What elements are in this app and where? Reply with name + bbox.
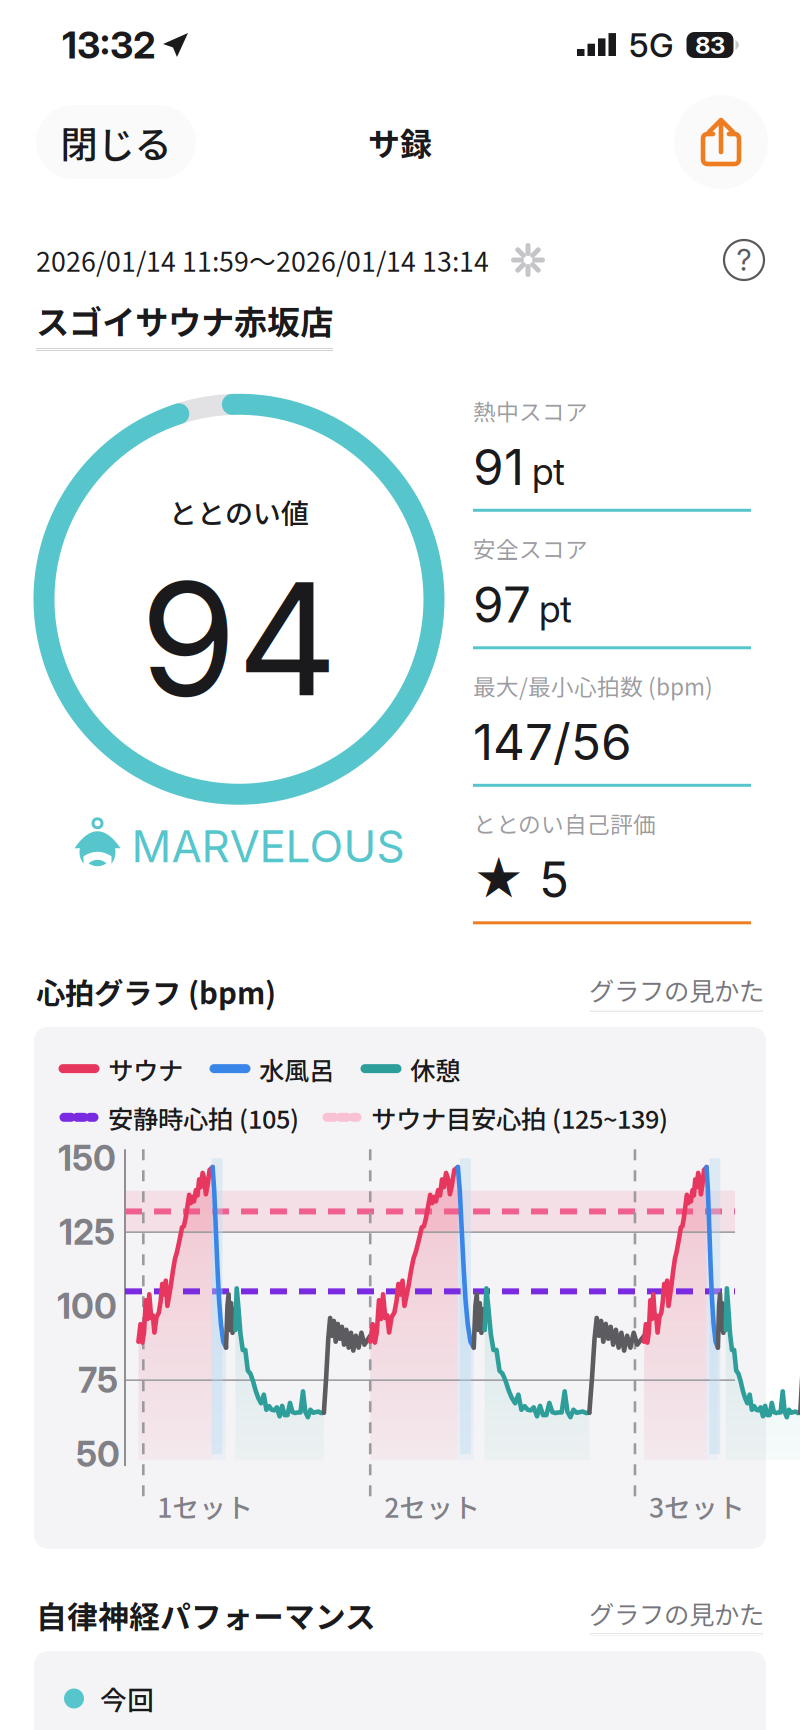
- staticText: ととのい自己評価: [473, 807, 656, 840]
- staticText: 94: [140, 544, 338, 733]
- staticText: 147/56: [473, 712, 632, 772]
- staticText: 心拍グラフ (bpm): [36, 970, 276, 1013]
- staticText: グラフの見かた: [589, 971, 764, 1008]
- staticText: 3セット: [649, 1487, 745, 1525]
- staticText: 91: [473, 437, 524, 497]
- staticText: pt: [539, 586, 572, 631]
- staticText: 2026/01/14 11:59〜2026/01/14 13:14: [36, 241, 489, 279]
- staticText: 安静時心拍 (105): [108, 1099, 299, 1136]
- staticText: 休憩: [410, 1051, 460, 1087]
- staticText: ?: [736, 242, 751, 278]
- button[interactable]: Help: [724, 240, 764, 280]
- staticText: サ録: [368, 119, 432, 165]
- staticText: 5G: [629, 25, 674, 65]
- staticText: 自律神経パフォーマンス: [36, 1593, 376, 1637]
- staticText: 83: [695, 30, 725, 59]
- button[interactable]: 閉じる: [36, 105, 196, 179]
- staticText: ★ 5: [473, 850, 569, 909]
- staticText: 50: [76, 1433, 120, 1475]
- staticText: グラフの見かた: [589, 1595, 764, 1632]
- staticText: 熱中スコア: [473, 394, 588, 427]
- button[interactable]: グラフの見かた: [589, 1595, 764, 1635]
- staticText: 97: [473, 575, 531, 634]
- staticText: 1セット: [157, 1487, 253, 1525]
- staticText: 2セット: [384, 1487, 480, 1525]
- staticText: 今回: [100, 1679, 154, 1718]
- staticText: 125: [59, 1211, 115, 1253]
- staticText: ととのい値: [169, 492, 309, 532]
- staticText: MARVELOUS: [131, 820, 404, 873]
- staticText: 13:32: [62, 22, 156, 68]
- button[interactable]: グラフの見かた: [589, 971, 764, 1012]
- button[interactable]: Share: [674, 95, 768, 189]
- staticText: 閉じる: [60, 115, 171, 169]
- staticText: 最大/最小心拍数 (bpm): [473, 669, 713, 702]
- staticText: サウナ目安心拍 (125~139): [371, 1099, 668, 1136]
- staticText: pt: [532, 449, 565, 494]
- staticText: スゴイサウナ赤坂店: [36, 296, 333, 344]
- staticText: 100: [57, 1285, 117, 1327]
- staticText: 水風呂: [259, 1051, 334, 1087]
- staticText: 75: [78, 1359, 118, 1401]
- staticText: サウナ: [108, 1051, 183, 1087]
- staticText: 安全スコア: [473, 532, 588, 565]
- staticText: 150: [58, 1137, 116, 1179]
